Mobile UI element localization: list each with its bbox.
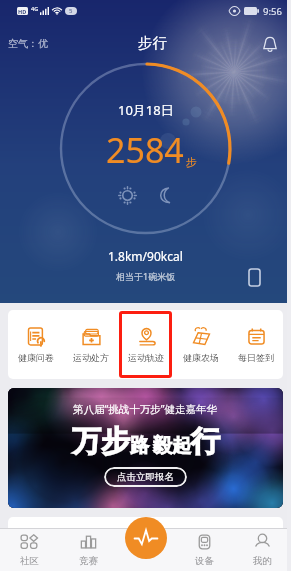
staticText: 第八届“挑战十万步”健走嘉年华	[73, 402, 218, 416]
button[interactable]: 第八届“挑战十万步”健走嘉年华	[8, 388, 283, 508]
staticText: 我的	[253, 555, 272, 567]
staticText: 5	[69, 7, 73, 15]
button[interactable]: 健康问卷	[9, 311, 62, 378]
button[interactable]: 我的	[233, 528, 291, 571]
staticText: 相当于1碗米饭	[116, 270, 176, 282]
staticText: 行	[191, 423, 220, 460]
button[interactable]: Notifications	[257, 30, 283, 56]
staticText: 9:56	[263, 5, 282, 18]
button[interactable]: 健康农场	[174, 311, 227, 378]
button[interactable]: 每日签到	[229, 311, 282, 378]
staticText: 运动处方	[73, 352, 109, 363]
button[interactable]: 点击立即报名	[104, 467, 187, 487]
button[interactable]: 设备	[175, 528, 233, 571]
button[interactable]: 运动处方	[64, 311, 117, 378]
button[interactable]: Phone pedometer	[243, 266, 265, 288]
staticText: 路	[130, 434, 149, 458]
button[interactable]: 社区	[0, 528, 59, 571]
staticText: 点击立即报名	[117, 471, 174, 483]
staticText: 设备	[195, 555, 214, 567]
staticText: 2584	[106, 127, 184, 173]
staticText: 1.8km/90kcal	[108, 248, 183, 264]
staticText: 步	[186, 155, 197, 169]
staticText: 健康农场	[183, 352, 219, 363]
staticText: 10月18日	[118, 101, 174, 119]
staticText: 空气：优	[8, 37, 48, 50]
button[interactable]: 运动轨迹	[119, 311, 172, 378]
staticText: 竞赛	[79, 555, 98, 567]
button[interactable]: 竞赛	[59, 528, 117, 571]
staticText: HD	[18, 8, 27, 15]
staticText: 万步	[72, 423, 130, 460]
staticText: 4G	[31, 5, 39, 12]
staticText: 社区	[20, 555, 39, 567]
staticText: 健康问卷	[18, 352, 54, 363]
staticText: 每日签到	[238, 352, 274, 363]
staticText: 毅起	[153, 434, 191, 458]
staticText: 步行	[138, 34, 167, 52]
staticText: 运动轨迹	[128, 352, 164, 363]
button[interactable]: 健康	[115, 528, 177, 571]
